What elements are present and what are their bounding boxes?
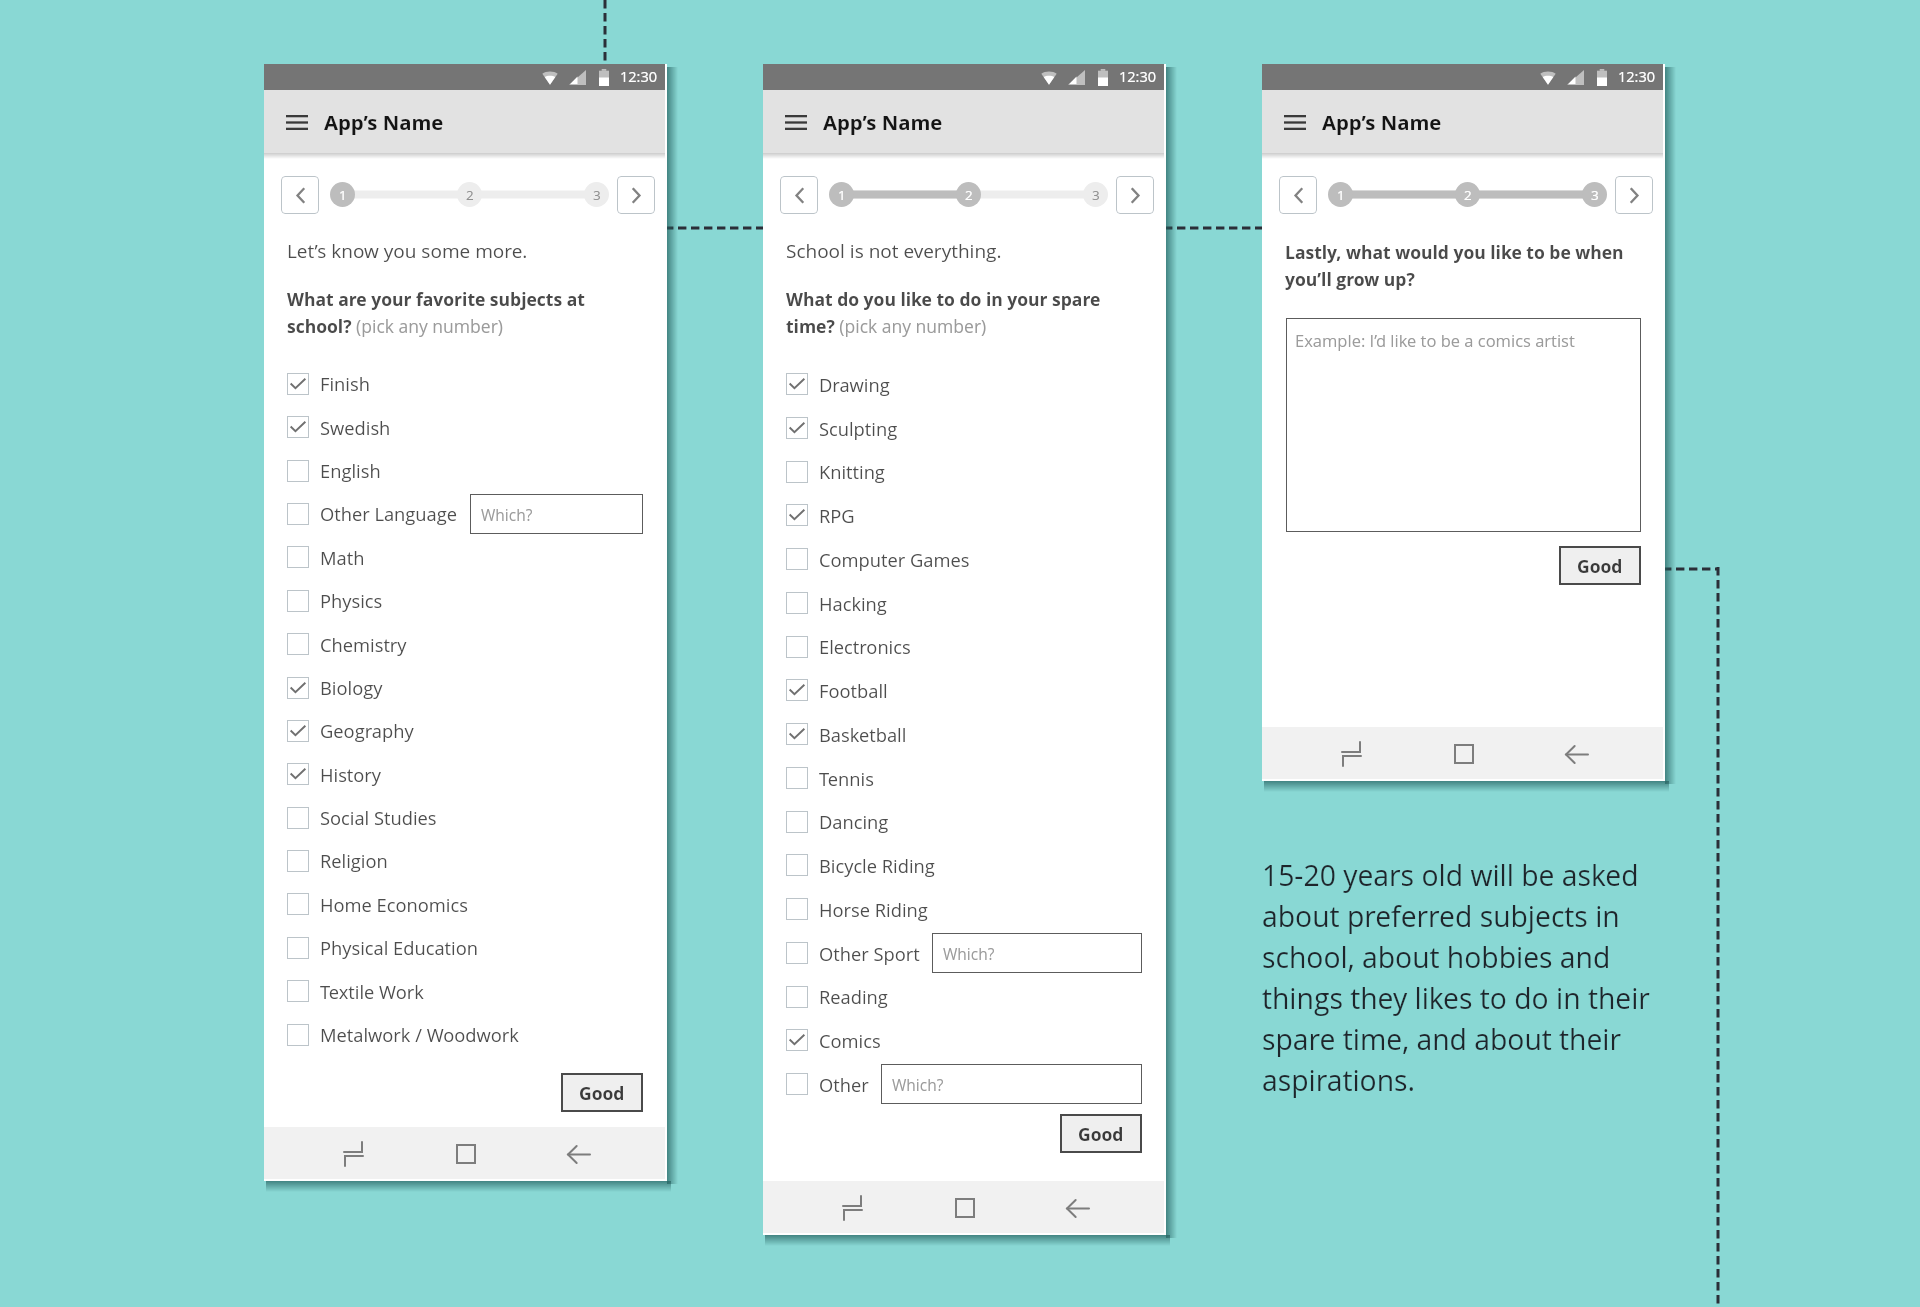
button[interactable]: Reading (786, 975, 1142, 1018)
button[interactable]: Tennis (786, 756, 1142, 800)
staticText: Football (819, 678, 888, 703)
button[interactable]: Open navigation menu (783, 109, 809, 135)
button[interactable]: Chemistry (287, 622, 643, 666)
staticText: What are your favorite subjects at schoo… (287, 287, 643, 338)
button[interactable]: Hacking (786, 581, 1142, 625)
button[interactable]: Which? (881, 1064, 1142, 1104)
staticText: RPG (819, 503, 855, 528)
staticText: 12:30 (1119, 67, 1157, 87)
button[interactable]: Good (561, 1073, 643, 1112)
staticText: Computer Games (819, 547, 970, 572)
staticText: Basketball (819, 722, 907, 747)
button[interactable]: Geography (287, 709, 643, 752)
button[interactable]: Open navigation menu (284, 109, 310, 135)
staticText: Good (1078, 1122, 1124, 1146)
button[interactable]: 2 (1455, 175, 1480, 214)
button[interactable]: Open navigation menu (1282, 109, 1308, 135)
button[interactable]: 2 (457, 175, 482, 214)
staticText: Let’s know you some more. (287, 238, 528, 264)
button[interactable]: Bicycle Riding (786, 843, 1142, 887)
button[interactable]: Which? (932, 933, 1142, 973)
staticText: 2 (1464, 186, 1472, 204)
staticText: Chemistry (320, 632, 407, 657)
button[interactable]: Previous step (780, 176, 818, 214)
button[interactable]: 3 (1083, 175, 1108, 214)
button[interactable]: Swedish (287, 405, 643, 449)
staticText: 1 (838, 186, 846, 204)
staticText: 12:30 (1618, 67, 1656, 87)
staticText: Biology (320, 675, 383, 700)
staticText: History (320, 762, 382, 787)
button[interactable]: Previous step (1279, 176, 1317, 214)
button[interactable]: Example: I’d like to be a comics artist (1286, 318, 1641, 532)
button[interactable]: 1 (1328, 175, 1353, 214)
button[interactable]: Good (1559, 546, 1641, 585)
button[interactable]: Math (287, 535, 643, 579)
button[interactable]: Next step (617, 176, 655, 214)
button[interactable]: Basketball (786, 712, 1142, 756)
button[interactable]: Physical Education (287, 926, 643, 969)
staticText: English (320, 458, 381, 483)
staticText: Geography (320, 718, 414, 743)
button[interactable]: 2 (956, 175, 981, 214)
staticText: Math (320, 545, 365, 570)
staticText: Bicycle Riding (819, 853, 935, 878)
button[interactable]: Metalwork / Woodwork (287, 1013, 643, 1056)
staticText: App’s Name (1322, 108, 1442, 136)
button[interactable]: Switch apps (829, 1185, 875, 1231)
button[interactable]: Football (786, 668, 1142, 712)
button[interactable]: Back (555, 1131, 601, 1177)
staticText: Comics (819, 1028, 881, 1053)
button[interactable]: Other Sport (786, 931, 1142, 975)
button[interactable]: Switch apps (330, 1131, 376, 1177)
button[interactable]: Which? (470, 494, 643, 534)
button[interactable]: Next step (1615, 176, 1653, 214)
button[interactable]: 3 (584, 175, 609, 214)
staticText: 3 (593, 186, 601, 204)
button[interactable]: History (287, 752, 643, 796)
staticText: Which? (943, 943, 995, 964)
button[interactable]: English (287, 449, 643, 492)
button[interactable]: Physics (287, 579, 643, 622)
button[interactable]: Comics (786, 1018, 1142, 1062)
button[interactable]: Home (443, 1131, 489, 1177)
button[interactable]: RPG (786, 493, 1142, 537)
button[interactable]: Other (786, 1062, 1142, 1106)
button[interactable]: Sculpting (786, 406, 1142, 450)
button[interactable]: Electronics (786, 625, 1142, 668)
button[interactable]: Horse Riding (786, 887, 1142, 931)
staticText: 2 (466, 186, 474, 204)
button[interactable]: Dancing (786, 800, 1142, 843)
button[interactable]: Textile Work (287, 969, 643, 1013)
button[interactable]: 3 (1582, 175, 1607, 214)
staticText: 1 (339, 186, 347, 204)
button[interactable]: Religion (287, 839, 643, 882)
button[interactable]: 1 (330, 175, 355, 214)
button[interactable]: Next step (1116, 176, 1154, 214)
button[interactable]: Computer Games (786, 537, 1142, 581)
button[interactable]: Drawing (786, 362, 1142, 406)
button[interactable]: Knitting (786, 450, 1142, 493)
button[interactable]: Biology (287, 666, 643, 709)
staticText: 3 (1591, 186, 1599, 204)
button[interactable]: Previous step (281, 176, 319, 214)
button[interactable]: Good (1060, 1114, 1142, 1153)
button[interactable]: Home Economics (287, 882, 643, 926)
staticText: 2 (965, 186, 973, 204)
button[interactable]: Social Studies (287, 796, 643, 839)
button[interactable]: Switch apps (1328, 731, 1374, 777)
staticText: Religion (320, 848, 388, 873)
staticText: Physical Education (320, 935, 478, 960)
button[interactable]: Home (1441, 731, 1487, 777)
button[interactable]: Back (1054, 1185, 1100, 1231)
button[interactable]: Other Language (287, 492, 643, 535)
staticText: Good (579, 1081, 625, 1105)
button[interactable]: 1 (829, 175, 854, 214)
staticText: Physics (320, 588, 383, 613)
staticText: Social Studies (320, 805, 437, 830)
button[interactable]: Finish (287, 362, 643, 405)
staticText: Which? (481, 504, 533, 525)
button[interactable]: Back (1553, 731, 1599, 777)
staticText: Lastly, what would you like to be when y… (1285, 240, 1641, 291)
button[interactable]: Home (942, 1185, 988, 1231)
